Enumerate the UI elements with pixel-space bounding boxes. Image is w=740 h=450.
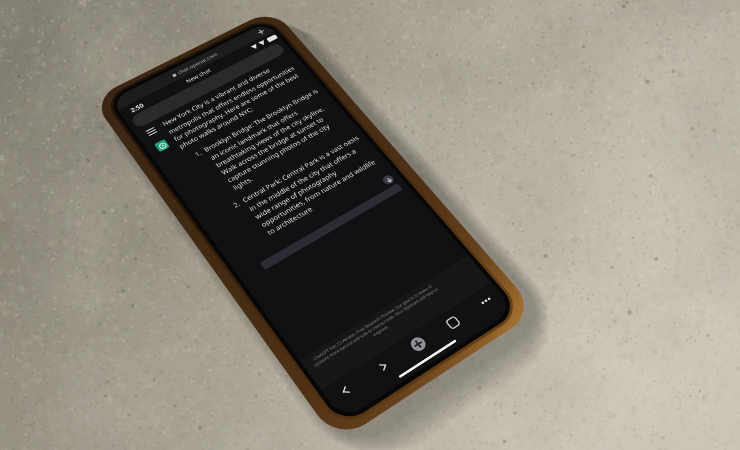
button[interactable]: Tabs	[442, 313, 462, 332]
button[interactable]: Back	[333, 380, 356, 401]
button[interactable]: Search	[129, 42, 287, 129]
button[interactable]: Message ChatGPT	[260, 183, 403, 270]
staticText: 2:50	[128, 101, 145, 113]
staticText: Brooklyn Bridge: The Brooklyn Bridge is …	[202, 86, 351, 191]
button[interactable]: Forward	[371, 356, 394, 377]
staticText: Central Park: Central Park is a vast oas…	[240, 133, 387, 236]
button[interactable]: New tab	[408, 335, 429, 354]
button[interactable]: More options	[474, 291, 496, 310]
staticText: chat.openai.com	[176, 51, 219, 75]
staticText: New chat	[184, 67, 213, 85]
button[interactable]: Scroll to bottom	[381, 173, 396, 186]
staticText: 1.	[193, 148, 203, 158]
button[interactable]: Menu	[143, 124, 159, 138]
staticText: ChatGPT Feb 13 Version. Free Research Pr…	[309, 282, 443, 373]
button[interactable]: New tab	[253, 26, 269, 38]
staticText: New York City is a vibrant and diverse m…	[160, 55, 311, 150]
staticText: 2.	[231, 199, 242, 209]
